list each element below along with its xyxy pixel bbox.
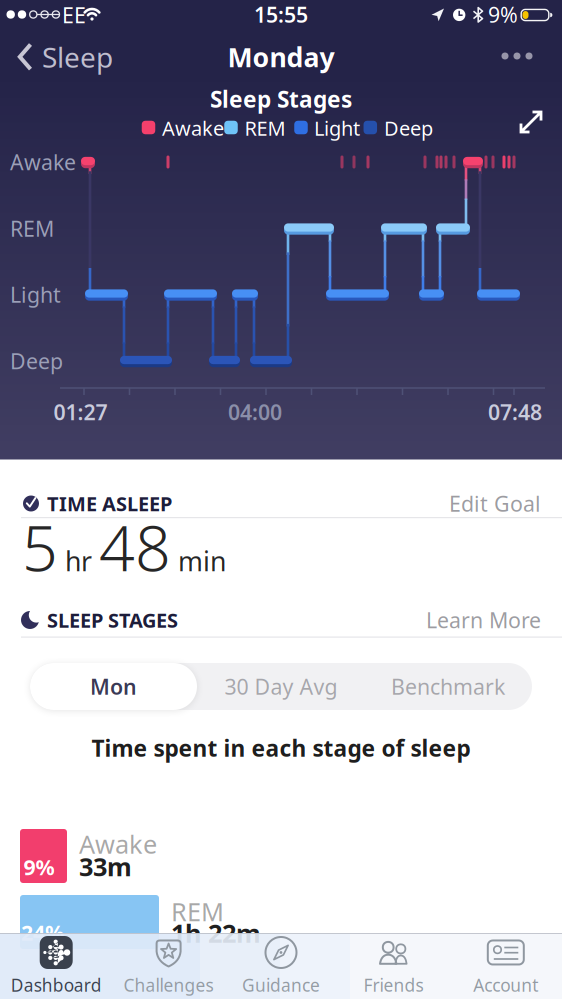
staticText: 30 Day Avg (224, 672, 337, 701)
staticText: Benchmark (391, 672, 505, 701)
staticText: REM (171, 895, 224, 928)
staticText: 48 (99, 505, 171, 589)
staticText: Sleep (42, 38, 113, 76)
staticText: EE (62, 1, 86, 29)
staticText: REM (10, 214, 54, 243)
staticText: Friends (363, 973, 423, 996)
button[interactable]: Friends (337, 934, 449, 998)
staticText: 01:27 (53, 398, 107, 426)
staticText: Light (314, 115, 360, 141)
staticText: Guidance (242, 973, 320, 996)
staticText: min (178, 543, 226, 579)
staticText: Deep (10, 347, 63, 375)
staticText: 9% (23, 853, 54, 881)
staticText: 5 (22, 505, 58, 589)
staticText: Deep (384, 115, 433, 141)
staticText: REM (244, 115, 285, 141)
staticText: Awake (10, 148, 76, 176)
staticText: Light (10, 280, 61, 309)
button[interactable]: Dashboard (0, 934, 112, 998)
button[interactable]: More (491, 42, 542, 69)
staticText: TIME ASLEEP (47, 490, 172, 517)
staticText: Edit Goal (449, 489, 541, 518)
staticText: 15:55 (254, 0, 308, 29)
staticText: Awake (79, 827, 157, 861)
staticText: 33m (79, 850, 132, 883)
staticText: Learn More (426, 606, 541, 634)
staticText: 1h 22m (171, 916, 261, 950)
staticText: hr (65, 543, 92, 579)
staticText: 04:00 (228, 398, 282, 426)
button[interactable]: Back (1, 35, 123, 79)
staticText: 24% (21, 918, 64, 947)
button[interactable]: Mon (30, 663, 197, 710)
staticText: Time spent in each stage of sleep (91, 733, 470, 763)
staticText: SLEEP STAGES (47, 607, 178, 633)
button[interactable]: Challenges (113, 934, 225, 998)
staticText: Mon (90, 672, 137, 701)
staticText: 9% (488, 0, 518, 29)
button[interactable]: 30 Day Avg (197, 663, 364, 710)
button[interactable]: Edit Goal (449, 483, 541, 524)
button[interactable]: Benchmark (364, 663, 531, 710)
staticText: Challenges (124, 973, 214, 996)
button[interactable]: Guidance (225, 934, 337, 998)
staticText: Monday (227, 39, 334, 75)
staticText: Awake (162, 115, 224, 141)
staticText: Dashboard (11, 973, 102, 996)
staticText: 07:48 (488, 398, 542, 426)
staticText: Account (473, 973, 538, 996)
button[interactable]: Account (450, 934, 562, 998)
button[interactable]: Learn More (426, 600, 541, 640)
staticText: Sleep Stages (210, 84, 352, 114)
button[interactable]: Expand chart (513, 104, 549, 140)
